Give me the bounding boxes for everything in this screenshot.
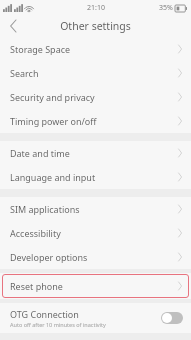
button[interactable]: OTG Connection [0, 303, 191, 333]
button[interactable]: Security and privacy [0, 85, 191, 109]
staticText: Timing power on/off [10, 115, 178, 127]
button[interactable]: Back [0, 15, 26, 37]
other: OTG Connection toggle [161, 312, 183, 324]
button[interactable]: Storage Space [0, 37, 191, 61]
staticText: Date and time [10, 147, 178, 159]
button[interactable]: Search [0, 61, 191, 85]
staticText: SIM applications [10, 203, 178, 215]
staticText: Accessibility [10, 227, 178, 239]
staticText: Search [10, 67, 178, 79]
staticText: Reset phone [10, 280, 178, 292]
button[interactable]: Reset phone [2, 274, 189, 298]
staticText: Security and privacy [10, 91, 178, 103]
button[interactable]: Language and input [0, 165, 191, 189]
button[interactable]: Developer options [0, 245, 191, 269]
staticText: Developer options [10, 251, 178, 263]
staticText: 35% [159, 3, 173, 13]
staticText: Auto off after 10 minutes of inactivity [10, 321, 106, 328]
button[interactable]: Timing power on/off [0, 109, 191, 133]
staticText: Other settings [60, 19, 131, 33]
staticText: Storage Space [10, 43, 178, 55]
staticText: Language and input [10, 171, 178, 183]
button[interactable]: Date and time [0, 141, 191, 165]
button[interactable]: SIM applications [0, 197, 191, 221]
button[interactable]: Accessibility [0, 221, 191, 245]
staticText: 21:10 [87, 3, 105, 13]
staticText: OTG Connection [10, 308, 79, 320]
